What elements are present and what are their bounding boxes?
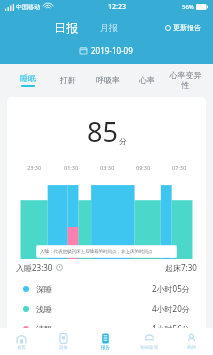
- staticText: 智能家居: [140, 345, 158, 351]
- staticText: 睡眠: [20, 73, 36, 83]
- staticText: 07:30: [172, 164, 187, 171]
- button[interactable]: 浅睡: [7, 303, 206, 314]
- button[interactable]: 心率变异性: [166, 70, 205, 90]
- button[interactable]: 呼吸率: [88, 70, 127, 90]
- staticText: 起床7:30: [165, 262, 197, 273]
- button[interactable]: 睡眠: [8, 70, 48, 90]
- button[interactable]: 首页: [0, 328, 42, 355]
- staticText: 4小时20分: [152, 303, 190, 314]
- staticText: 设备: [59, 345, 68, 351]
- button[interactable]: 更新报告: [163, 20, 203, 35]
- staticText: 首页: [17, 345, 26, 351]
- staticText: 心率变异性: [166, 70, 205, 90]
- staticText: 09:30: [136, 164, 151, 171]
- staticText: 心率: [139, 75, 155, 85]
- staticText: 呼吸率: [96, 75, 120, 85]
- staticText: 清醒: [36, 324, 52, 334]
- staticText: 入睡23:30: [16, 262, 53, 273]
- button[interactable]: 心率: [127, 70, 166, 90]
- staticText: 入睡：代表您躺到床上后睡着的时间点，非上床的时间点: [40, 249, 153, 255]
- button[interactable]: 月报: [94, 20, 124, 35]
- staticText: 1小时56分: [152, 323, 190, 334]
- staticText: 打鼾: [60, 75, 76, 85]
- staticText: 深睡: [36, 284, 52, 294]
- staticText: 2小时05分: [152, 283, 190, 294]
- button[interactable]: 2019-10-09: [0, 40, 213, 60]
- staticText: 01:30: [64, 164, 79, 171]
- staticText: 03:30: [100, 164, 115, 171]
- staticText: 我的: [187, 345, 196, 351]
- staticText: 56%: [182, 3, 194, 11]
- button[interactable]: 报告: [84, 328, 127, 355]
- staticText: 报告: [101, 345, 110, 351]
- button[interactable]: 打鼾: [48, 70, 88, 90]
- staticText: 中国移动: [16, 3, 40, 11]
- staticText: 日报: [54, 20, 78, 35]
- button[interactable]: 说明: [56, 264, 63, 271]
- staticText: 85: [87, 113, 118, 150]
- button[interactable]: 清醒: [7, 323, 206, 334]
- button[interactable]: 深睡: [7, 283, 206, 294]
- staticText: 月报: [100, 22, 118, 33]
- staticText: 浅睡: [36, 304, 52, 314]
- staticText: 23:30: [27, 164, 42, 171]
- button[interactable]: 设备: [42, 328, 84, 355]
- staticText: 分: [119, 136, 127, 146]
- staticText: 2019-10-09: [91, 45, 133, 56]
- button[interactable]: 日报: [48, 18, 84, 37]
- button[interactable]: 我的: [170, 328, 213, 355]
- staticText: 更新报告: [173, 23, 201, 32]
- staticText: 12:23: [108, 2, 126, 12]
- button[interactable]: 智能家居: [127, 328, 170, 355]
